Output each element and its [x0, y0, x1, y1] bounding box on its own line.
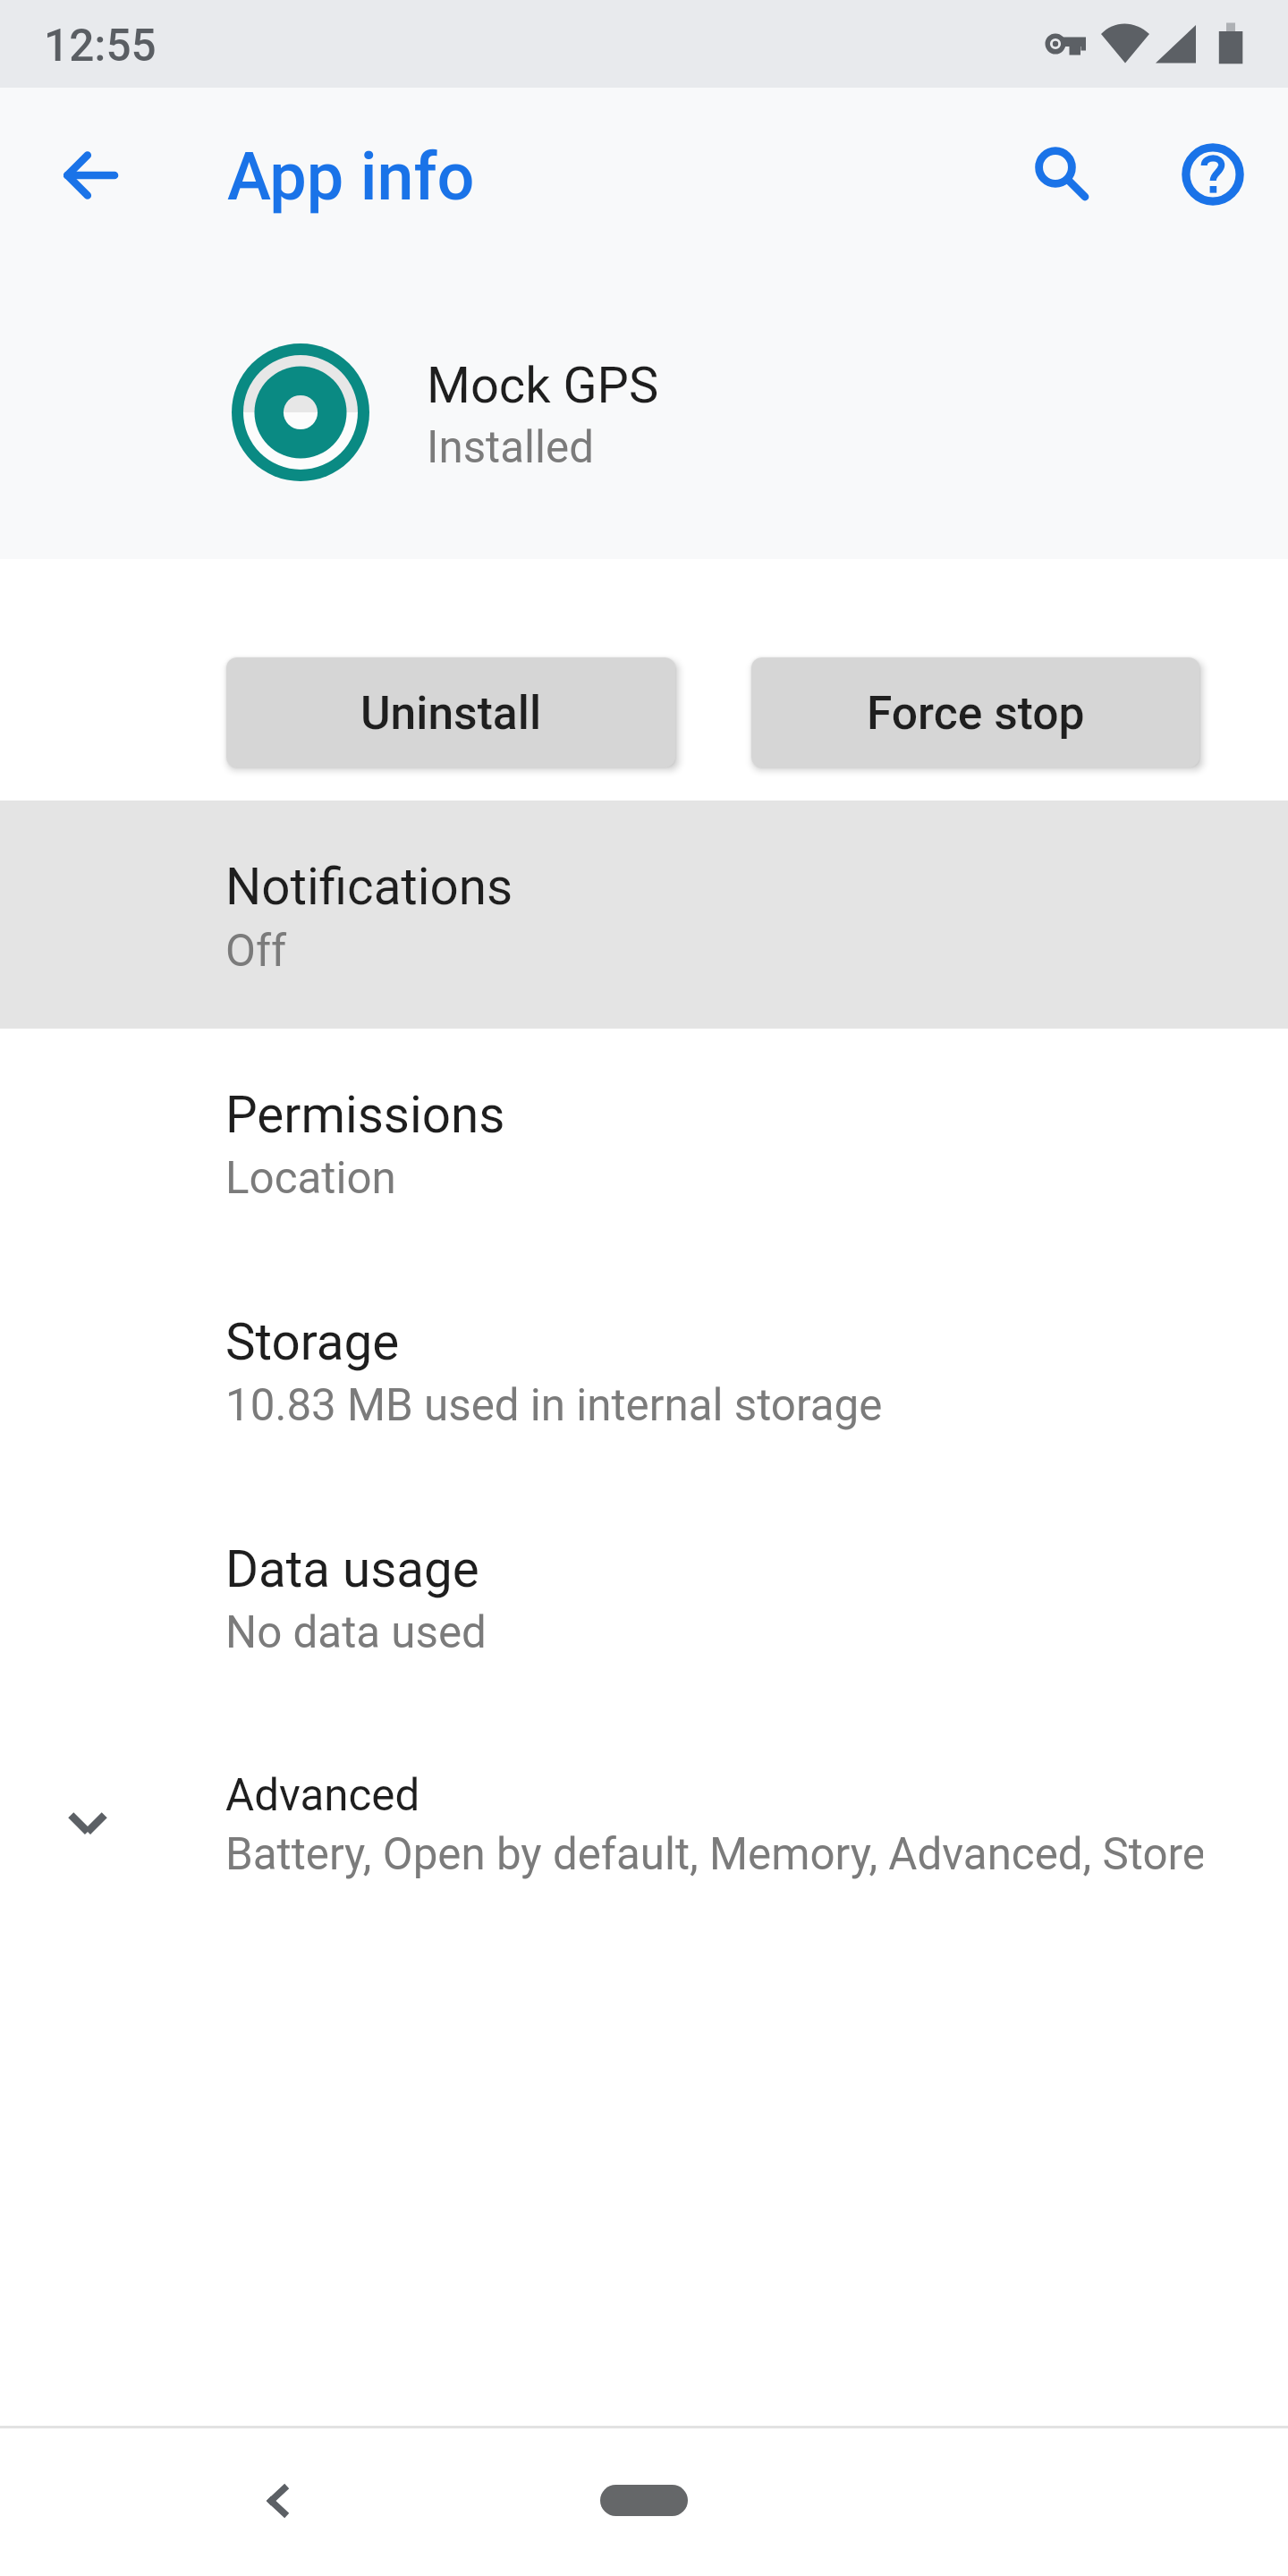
staticText: No data used [225, 1606, 487, 1658]
staticText: Uninstall [360, 686, 542, 740]
button[interactable]: Navigate up [52, 138, 127, 213]
button[interactable]: Home [600, 2485, 688, 2516]
staticText: Battery, Open by default, Memory, Advanc… [225, 1828, 1203, 1880]
staticText: Off [225, 925, 287, 977]
staticText: Location [225, 1152, 396, 1204]
staticText: Advanced [225, 1769, 420, 1821]
button[interactable]: Storage [0, 1256, 1288, 1483]
button[interactable]: Advanced [0, 1710, 1288, 1937]
button[interactable]: Help [1170, 131, 1256, 217]
button[interactable]: Uninstall [226, 657, 675, 767]
staticText: Permissions [225, 1086, 505, 1145]
staticText: Installed [427, 421, 594, 473]
staticText: App info [227, 139, 475, 216]
staticText: Mock GPS [427, 356, 659, 415]
button[interactable]: Search [1013, 124, 1098, 210]
staticText: 10.83 MB used in internal storage [225, 1379, 883, 1431]
staticText: Force stop [867, 686, 1085, 740]
staticText: Notifications [225, 858, 513, 917]
button[interactable]: Data usage [0, 1483, 1288, 1710]
staticText: 12:55 [44, 20, 157, 72]
button[interactable]: Back [240, 2462, 318, 2540]
button[interactable]: Permissions [0, 1029, 1288, 1256]
staticText: Data usage [225, 1540, 479, 1599]
button[interactable]: Force stop [751, 657, 1199, 767]
staticText: Storage [225, 1313, 400, 1372]
button[interactable]: Notifications [0, 801, 1288, 1028]
